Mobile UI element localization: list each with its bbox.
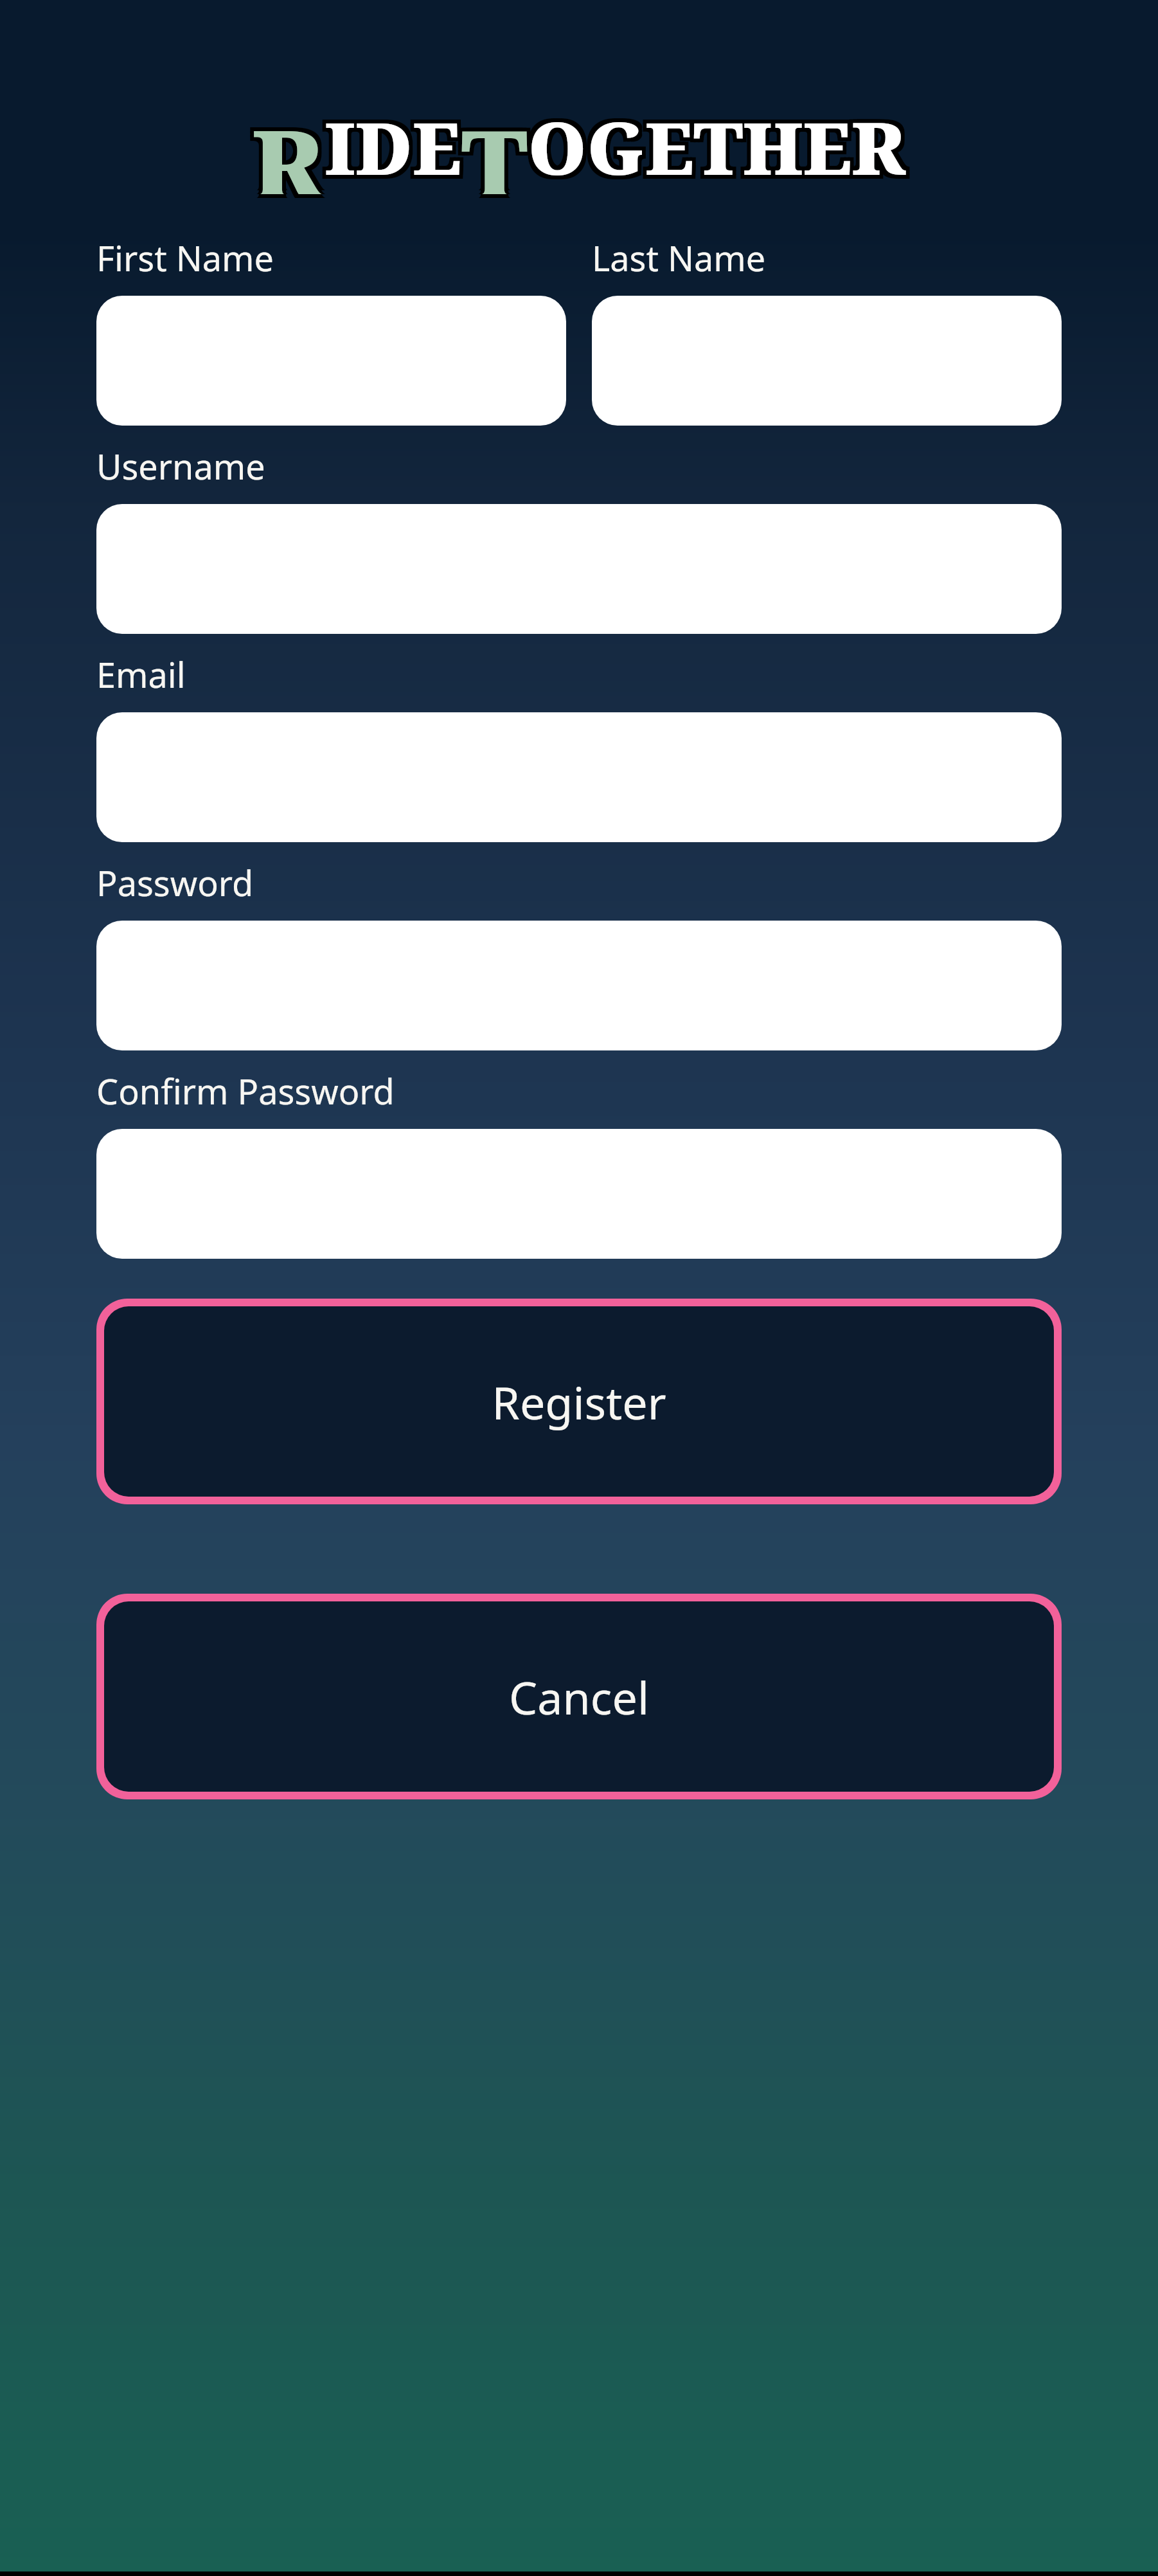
staticText: OGETHER [524, 98, 902, 194]
staticText: T [461, 98, 528, 194]
staticText: T [465, 94, 531, 190]
staticText: R [248, 98, 321, 194]
staticText: OGETHER [528, 102, 906, 198]
staticText: IDE [328, 94, 465, 190]
staticText: OGETHER [528, 98, 906, 194]
button[interactable]: Text input field [592, 296, 1062, 426]
staticText: R [248, 94, 321, 190]
staticText: R [252, 98, 325, 194]
staticText: OGETHER [531, 98, 910, 194]
staticText: OGETHER [528, 94, 906, 190]
staticText: IDE [328, 98, 465, 194]
staticText: T [465, 98, 531, 194]
staticText: R [256, 98, 328, 194]
staticText: IDE [325, 94, 461, 190]
staticText: IDE [321, 94, 458, 190]
staticText: Username [96, 442, 265, 490]
staticText: T [458, 94, 524, 190]
button[interactable]: Text input field [96, 921, 1062, 1050]
button[interactable]: Register [104, 1306, 1054, 1497]
button[interactable]: Text input field [96, 712, 1062, 842]
staticText: T [458, 102, 524, 198]
staticText: R [256, 102, 328, 198]
staticText: R [252, 102, 325, 198]
staticText: R [248, 102, 321, 198]
staticText: IDE [321, 98, 458, 194]
staticText: Last Name [592, 234, 766, 282]
staticText: T [461, 102, 528, 198]
staticText: IDE [328, 102, 465, 198]
button[interactable]: Cancel [104, 1601, 1054, 1792]
staticText: First Name [96, 234, 274, 282]
staticText: IDE [325, 98, 461, 194]
staticText: Confirm Password [96, 1067, 395, 1115]
staticText: T [458, 98, 524, 194]
button[interactable]: Text input field [96, 504, 1062, 634]
staticText: R [256, 94, 328, 190]
staticText: OGETHER [524, 94, 902, 190]
staticText: T [465, 102, 531, 198]
staticText: Register [492, 1371, 666, 1432]
staticText: OGETHER [531, 102, 910, 198]
staticText: Email [96, 651, 186, 698]
button[interactable]: Text input field [96, 1129, 1062, 1259]
staticText: T [461, 94, 528, 190]
staticText: OGETHER [531, 94, 910, 190]
staticText: IDE [325, 102, 461, 198]
staticText: OGETHER [524, 102, 902, 198]
staticText: IDE [321, 102, 458, 198]
staticText: Password [96, 859, 254, 906]
staticText: Cancel [509, 1666, 649, 1727]
button[interactable]: Text input field [96, 296, 566, 426]
staticText: R [252, 94, 325, 190]
